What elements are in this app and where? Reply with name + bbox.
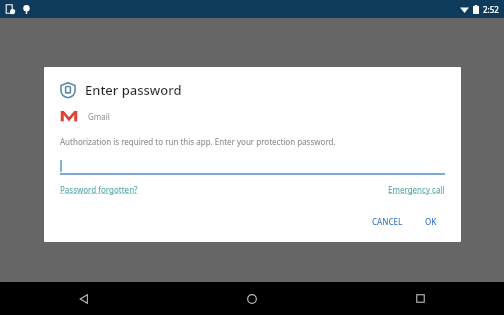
button[interactable]: OK (417, 211, 445, 232)
button[interactable]: Password forgotten? (60, 184, 138, 195)
staticText: Enter password (85, 81, 182, 99)
button[interactable]: Home (168, 282, 336, 315)
staticText: 2:52 (483, 4, 499, 15)
staticText: Gmail (88, 111, 110, 122)
button[interactable]: Back (0, 282, 168, 315)
button[interactable]: CANCEL (364, 211, 411, 232)
staticText: Password forgotten? (60, 184, 138, 195)
button[interactable] (60, 159, 445, 175)
staticText: CANCEL (372, 216, 403, 227)
button[interactable]: Emergency call (388, 184, 445, 195)
staticText: Authorization is required to run this ap… (60, 136, 336, 147)
staticText: Emergency call (388, 184, 445, 195)
button[interactable]: Recent apps (336, 282, 504, 315)
staticText: OK (425, 216, 437, 227)
